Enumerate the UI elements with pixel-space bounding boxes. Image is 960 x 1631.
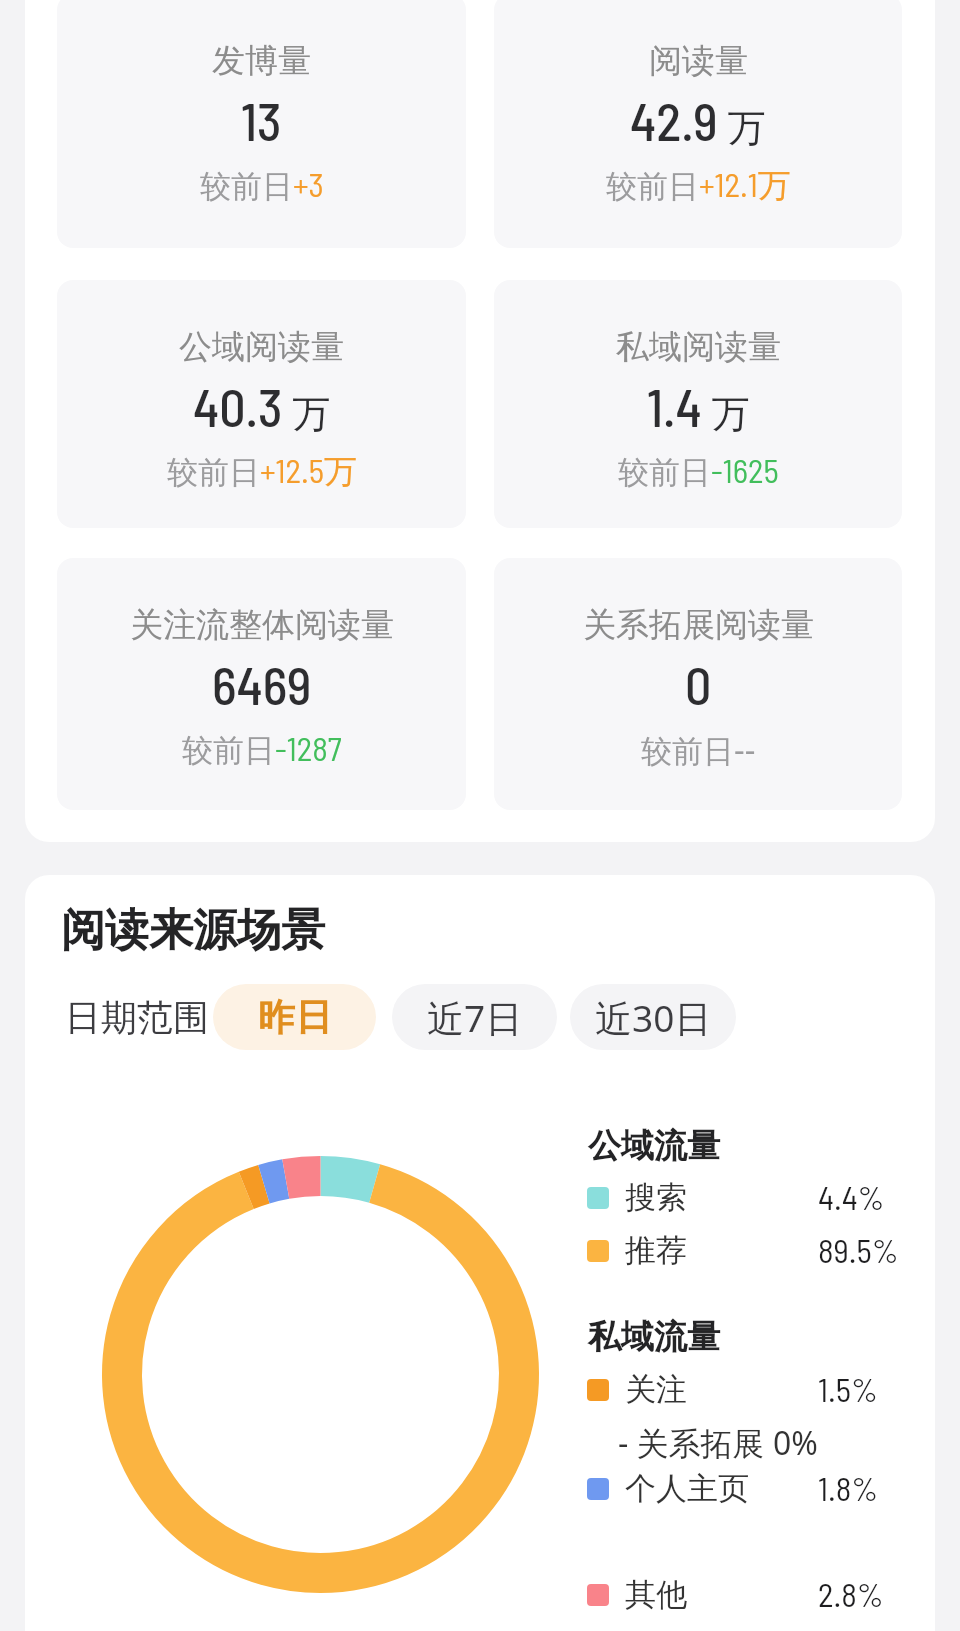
staticText: 关注流整体阅读量 (130, 604, 394, 646)
button[interactable]: 推荐 (587, 1226, 887, 1274)
staticText: 私域阅读量 (616, 326, 781, 368)
staticText: 较前日+12.1万 (606, 164, 791, 207)
staticText: 40.3 万 (193, 375, 331, 435)
staticText: 关注 (625, 1370, 687, 1409)
button[interactable]: 公域阅读量 (57, 280, 466, 528)
staticText: 0 (685, 653, 712, 713)
button[interactable]: 近30日 (570, 984, 736, 1050)
staticText: 6469 (212, 653, 312, 713)
staticText: 较前日-- (641, 727, 756, 772)
button[interactable]: 关注 (587, 1365, 887, 1413)
button[interactable]: 昨日 (213, 984, 376, 1050)
button[interactable]: 阅读量 (494, 0, 902, 248)
button[interactable]: 其他 (587, 1570, 887, 1618)
staticText: 公域流量 (588, 1125, 720, 1167)
staticText: 1.4 万 (647, 375, 750, 435)
staticText: 近7日 (427, 992, 523, 1043)
staticText: 公域阅读量 (179, 326, 344, 368)
staticText: 昨日 (258, 994, 332, 1041)
button[interactable]: 个人主页 (587, 1464, 887, 1512)
staticText: 其他 (625, 1575, 687, 1614)
staticText: 阅读来源场景 (61, 903, 325, 958)
staticText: 13 (241, 89, 282, 149)
staticText: 2.8% (818, 1574, 884, 1614)
staticText: 搜索 (625, 1178, 687, 1217)
staticText: 阅读量 (649, 40, 748, 82)
button[interactable]: 关系拓展阅读量 (494, 558, 902, 810)
staticText: 私域流量 (588, 1316, 720, 1358)
button[interactable]: 私域阅读量 (494, 280, 902, 528)
staticText: 1.5% (818, 1369, 878, 1409)
button[interactable]: 关注流整体阅读量 (57, 558, 466, 810)
staticText: 近30日 (595, 992, 712, 1043)
staticText: 个人主页 (625, 1469, 749, 1508)
staticText: 日期范围 (65, 995, 209, 1040)
staticText: 推荐 (625, 1231, 687, 1270)
staticText: 较前日-1287 (182, 728, 342, 770)
staticText: 发博量 (212, 40, 311, 82)
staticText: 42.9 万 (630, 89, 766, 149)
staticText: 较前日-1625 (618, 450, 779, 492)
staticText: 4.4% (818, 1177, 885, 1217)
button[interactable]: 近7日 (392, 984, 557, 1050)
staticText: 1.8% (818, 1468, 879, 1508)
staticText: 89.5% (818, 1230, 899, 1270)
staticText: 较前日+3 (200, 164, 324, 206)
staticText: 关系拓展阅读量 (583, 604, 814, 646)
staticText: 较前日+12.5万 (167, 450, 357, 493)
button[interactable]: 搜索 (587, 1173, 887, 1221)
staticText: - 关系拓展 0% (618, 1421, 818, 1465)
button[interactable]: 发博量 (57, 0, 466, 248)
